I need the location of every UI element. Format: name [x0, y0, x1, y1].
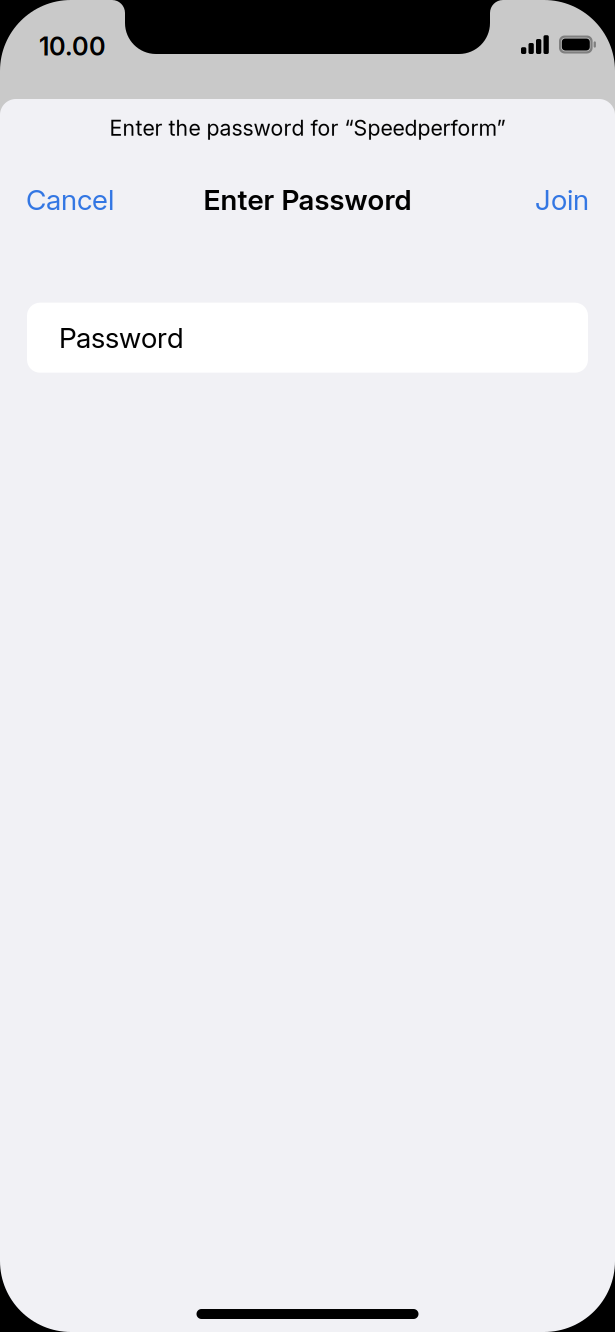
staticText: Enter Password	[203, 183, 411, 217]
staticText: Password	[59, 321, 184, 355]
button[interactable]: Cancel	[26, 171, 114, 229]
button[interactable]: Password	[27, 303, 588, 373]
staticText: Join	[535, 183, 589, 217]
staticText: Cancel	[26, 183, 114, 217]
staticText: 10.00	[39, 31, 106, 62]
button[interactable]: Join	[535, 171, 589, 229]
staticText: Enter the password for “Speedperform”	[109, 115, 505, 141]
